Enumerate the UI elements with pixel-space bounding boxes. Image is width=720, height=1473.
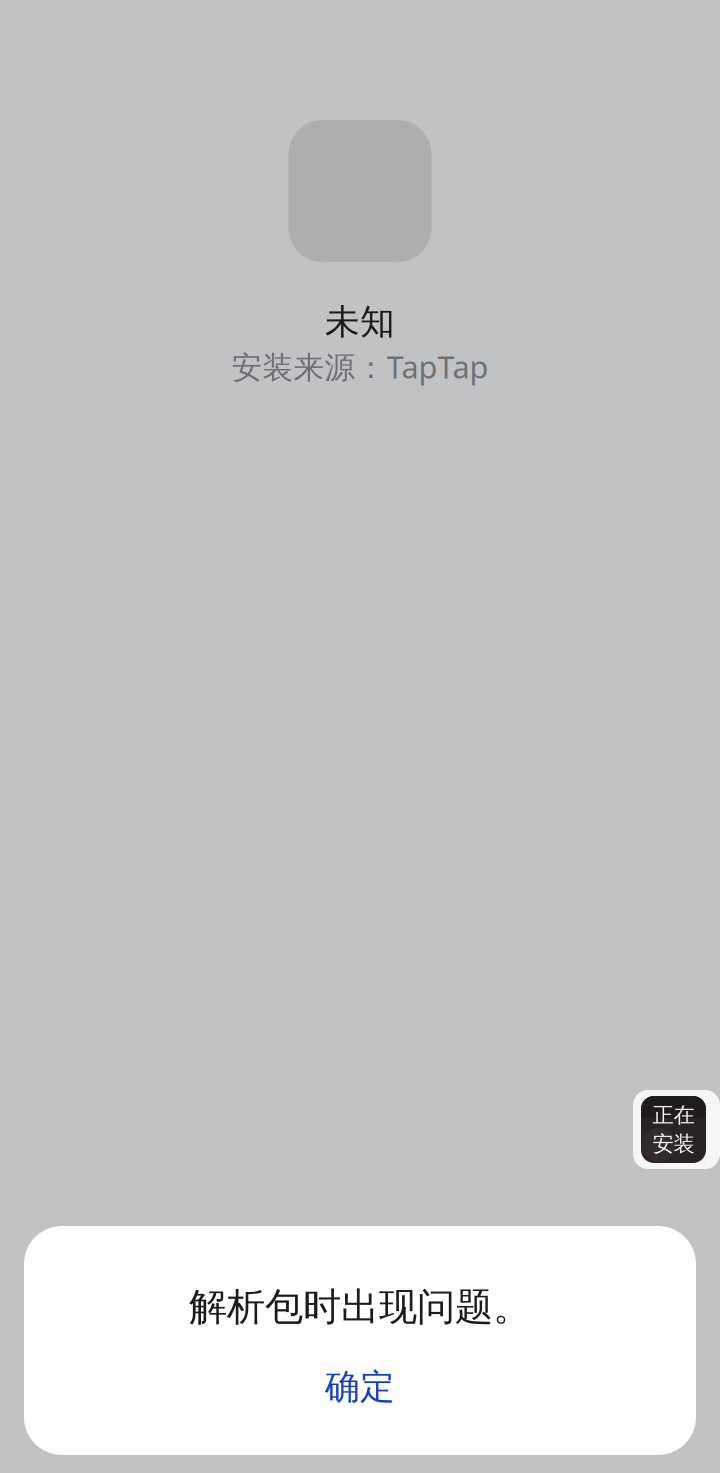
staticText: 正在 bbox=[652, 1102, 694, 1128]
staticText: 确定 bbox=[325, 1365, 395, 1409]
staticText: 安装 bbox=[652, 1130, 694, 1157]
button[interactable]: 确定 bbox=[24, 1361, 696, 1413]
button[interactable]: 正在安装 bbox=[633, 1090, 720, 1169]
staticText: 未知 bbox=[325, 300, 395, 344]
staticText: 解析包时出现问题。 bbox=[189, 1283, 531, 1331]
staticText: 安装来源：TapTap bbox=[231, 346, 488, 387]
